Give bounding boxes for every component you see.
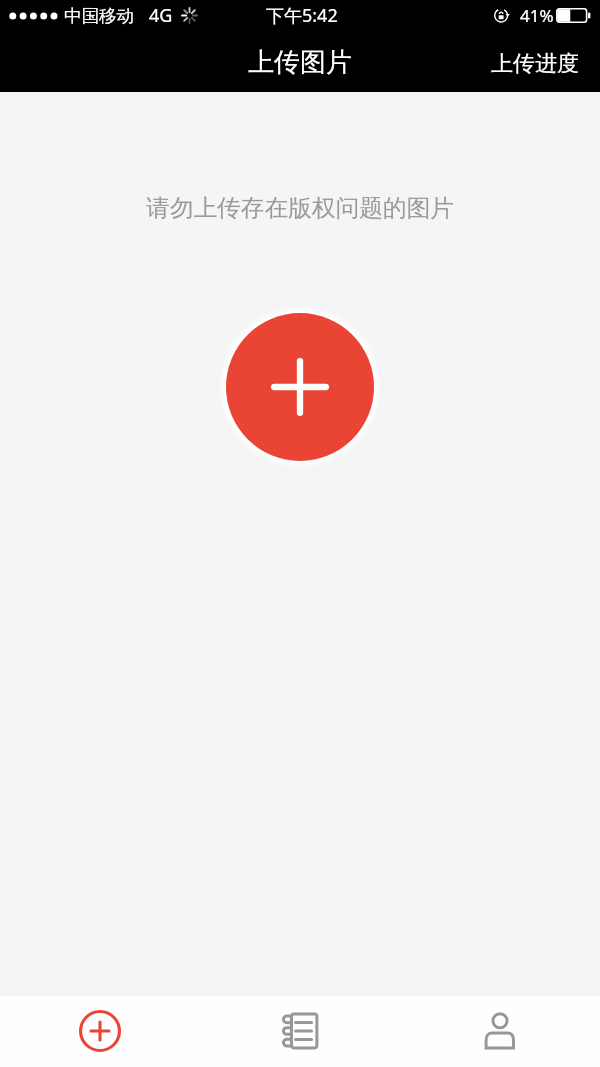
staticText: 41% <box>520 4 554 27</box>
staticText: 中国移动 <box>64 5 134 27</box>
staticText: 上传图片 <box>248 46 352 79</box>
button[interactable]: Notes <box>200 996 400 1067</box>
button[interactable]: Add picture <box>226 313 374 461</box>
button[interactable]: 上传进度 <box>470 38 600 90</box>
staticText: 4G <box>149 3 173 28</box>
staticText: 上传进度 <box>491 50 579 78</box>
button[interactable]: Profile <box>400 996 600 1067</box>
button[interactable]: Add <box>0 996 200 1067</box>
staticText: 请勿上传存在版权问题的图片 <box>146 193 454 223</box>
staticText: 下午5:42 <box>266 3 338 28</box>
